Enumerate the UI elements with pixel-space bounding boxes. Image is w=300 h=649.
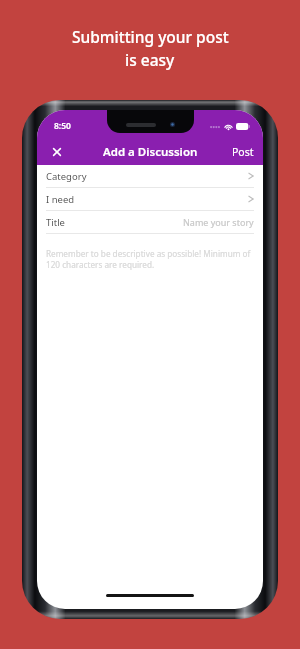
staticText: Add a Discussion: [103, 144, 198, 160]
button[interactable]: Remember to be descriptive as possible! …: [46, 248, 251, 270]
staticText: Category: [46, 170, 87, 183]
staticText: Remember to be descriptive as possible! …: [46, 248, 251, 270]
staticText: 8:50: [54, 120, 71, 132]
staticText: is easy: [125, 49, 175, 70]
button[interactable]: I need: [37, 188, 263, 210]
button[interactable]: Title: [37, 211, 263, 233]
staticText: Submitting your post: [72, 26, 229, 47]
staticText: I need: [46, 193, 75, 206]
staticText: Title: [46, 216, 65, 229]
button[interactable]: Category: [37, 165, 263, 187]
staticText: Name your story: [183, 216, 254, 228]
staticText: Post: [232, 145, 254, 159]
button[interactable]: Close: [37, 138, 77, 165]
button[interactable]: Post: [223, 138, 263, 165]
